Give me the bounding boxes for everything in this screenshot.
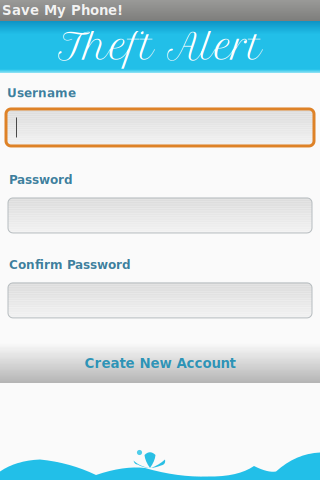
staticText: Theft Alert <box>58 25 262 69</box>
staticText: Username <box>7 86 76 100</box>
staticText: Password <box>9 173 73 187</box>
staticText: Confirm Password <box>9 258 131 272</box>
button[interactable]: Create New Account <box>0 344 320 383</box>
staticText: Create New Account <box>84 356 235 371</box>
staticText: Save My Phone! <box>2 3 123 18</box>
